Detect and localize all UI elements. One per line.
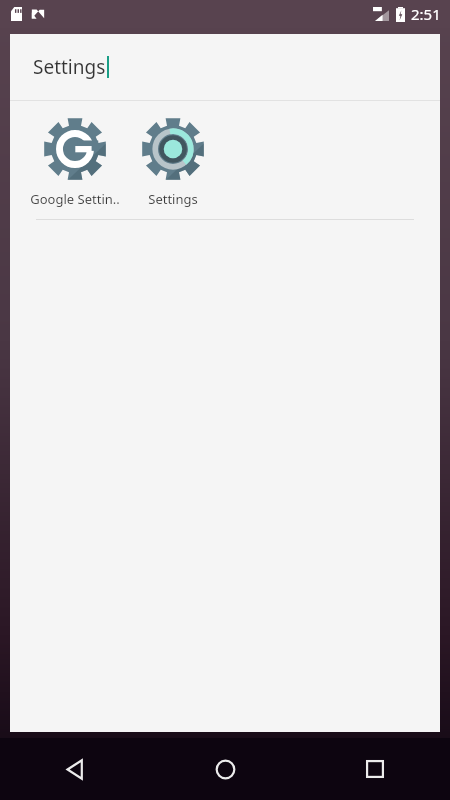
button[interactable]: Back <box>0 738 150 800</box>
staticText: Google Settin.. <box>30 190 120 208</box>
button[interactable]: Settings <box>10 34 440 100</box>
button[interactable]: Google Settings <box>26 114 124 208</box>
button[interactable]: Recent apps <box>300 738 450 800</box>
staticText: 2:51 <box>411 4 441 24</box>
other: Settings <box>140 116 206 182</box>
button[interactable]: Settings <box>124 114 222 208</box>
staticText: Settings <box>33 54 106 80</box>
other: Google Settings <box>42 116 108 182</box>
button[interactable]: Home <box>150 738 300 800</box>
staticText: Settings <box>148 190 198 208</box>
